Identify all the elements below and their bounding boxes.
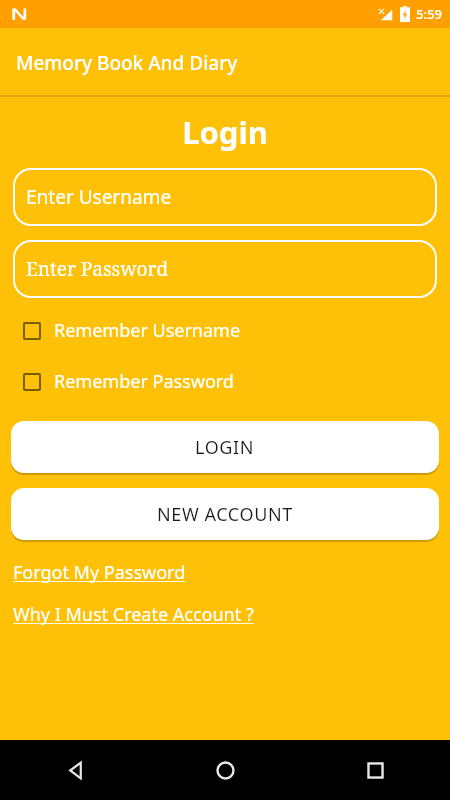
staticText: Forgot My Password [13, 560, 186, 585]
staticText: 5:59 [416, 5, 442, 23]
staticText: Enter Password [26, 256, 169, 282]
staticText: Enter Username [26, 184, 172, 210]
button[interactable]: Forgot My Password [13, 560, 186, 585]
staticText: Remember Password [54, 369, 234, 394]
button[interactable]: Recent apps [300, 740, 450, 800]
button[interactable]: Remember Username [23, 318, 450, 343]
button[interactable]: NEW ACCOUNT [11, 488, 439, 540]
staticText: NEW ACCOUNT [157, 502, 293, 527]
staticText: Remember Username [54, 318, 241, 343]
staticText: Memory Book And Diary [16, 50, 238, 76]
staticText: LOGIN [195, 435, 255, 460]
button[interactable]: Back [0, 740, 150, 800]
button[interactable]: Enter Password [13, 240, 437, 298]
staticText: Login [0, 111, 450, 153]
button[interactable]: Remember Password [23, 369, 450, 394]
button[interactable]: Why I Must Create Account ? [13, 602, 254, 627]
button[interactable]: Enter Username [13, 168, 437, 226]
staticText: Why I Must Create Account ? [13, 602, 254, 627]
button[interactable]: LOGIN [11, 421, 439, 473]
button[interactable]: Home [150, 740, 300, 800]
